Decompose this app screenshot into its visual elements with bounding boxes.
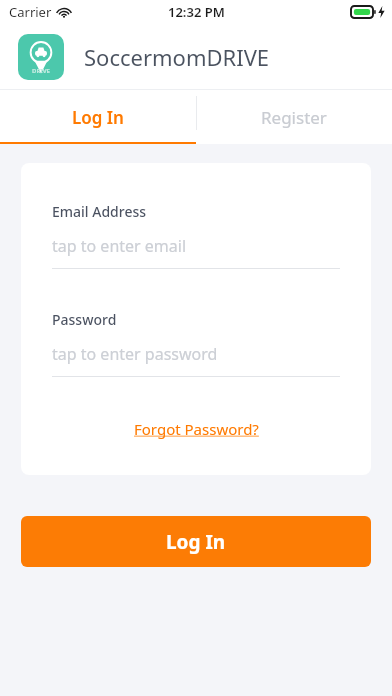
staticText: Forgot Password?: [134, 419, 259, 439]
staticText: tap to enter password: [52, 343, 218, 365]
staticText: tap to enter email: [52, 235, 187, 257]
staticText: Register: [261, 106, 327, 129]
staticText: Log In: [72, 106, 124, 129]
staticText: Email Address: [52, 202, 147, 221]
button[interactable]: Email Address: [52, 202, 340, 269]
button[interactable]: Log In: [21, 516, 371, 567]
button[interactable]: Forgot Password?: [130, 417, 263, 441]
other: SoccermomDRIVE logo: [18, 34, 64, 80]
staticText: Carrier: [9, 3, 52, 21]
staticText: Log In: [166, 529, 226, 555]
staticText: SoccermomDRIVE: [84, 42, 270, 72]
staticText: DRIVE: [32, 67, 50, 75]
button[interactable]: Log In: [0, 90, 196, 144]
staticText: 12:32 PM: [168, 3, 225, 21]
button[interactable]: Password: [52, 310, 340, 377]
staticText: Password: [52, 310, 117, 329]
button[interactable]: Register: [196, 90, 392, 144]
